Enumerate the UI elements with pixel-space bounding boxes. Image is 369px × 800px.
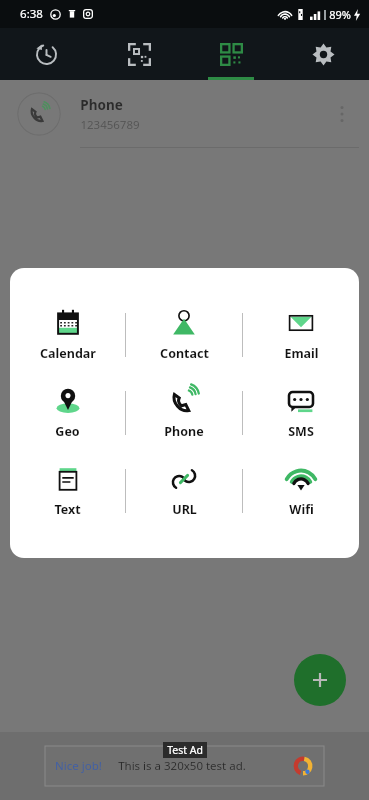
staticText: Email xyxy=(284,345,319,362)
button[interactable]: History xyxy=(0,28,93,80)
button[interactable]: Generate xyxy=(185,28,277,80)
button[interactable]: Text xyxy=(10,458,125,524)
button[interactable]: Contact xyxy=(126,302,242,368)
staticText: Text xyxy=(54,501,81,518)
staticText: URL xyxy=(172,501,197,518)
staticText: 6:38 xyxy=(20,6,43,22)
button[interactable]: Calendar xyxy=(10,302,125,368)
staticText: Geo xyxy=(55,423,80,440)
button[interactable]: Phone entry icon xyxy=(17,92,61,136)
staticText: Phone xyxy=(80,96,123,114)
staticText: Contact xyxy=(160,345,209,362)
staticText: Calendar xyxy=(40,345,96,362)
button[interactable]: SMS xyxy=(243,380,359,446)
staticText: 123456789 xyxy=(80,117,140,133)
button[interactable]: Nice job! xyxy=(45,746,324,786)
button[interactable]: Scan xyxy=(93,28,185,80)
staticText: Test Ad xyxy=(167,743,203,757)
button[interactable]: Settings xyxy=(277,28,369,80)
button[interactable]: Add xyxy=(294,654,346,706)
staticText: 89% xyxy=(329,7,351,22)
button[interactable]: URL xyxy=(126,458,242,524)
button[interactable]: Wifi xyxy=(243,458,359,524)
staticText: Wifi xyxy=(289,501,314,518)
staticText: Nice job! xyxy=(55,758,102,774)
button[interactable]: Email xyxy=(243,302,359,368)
staticText: This is a 320x50 test ad. xyxy=(118,758,246,774)
button[interactable]: Geo xyxy=(10,380,125,446)
staticText: SMS xyxy=(288,423,314,440)
staticText: Phone xyxy=(164,423,204,440)
button[interactable]: Phone xyxy=(126,380,242,446)
